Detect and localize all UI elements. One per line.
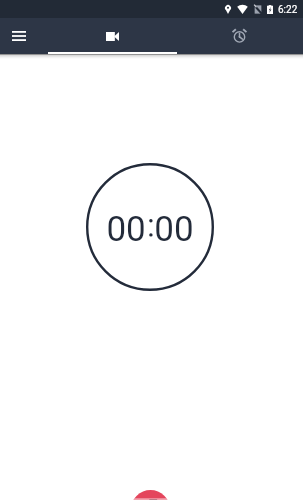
staticText: 00:00 xyxy=(106,209,194,250)
button[interactable]: Video recorder tab xyxy=(48,18,177,54)
button[interactable]: Alarm tab xyxy=(177,18,302,54)
button[interactable]: Open navigation menu xyxy=(4,18,33,54)
staticText: 6:22 xyxy=(278,4,298,16)
button[interactable]: Start recording xyxy=(131,490,170,500)
